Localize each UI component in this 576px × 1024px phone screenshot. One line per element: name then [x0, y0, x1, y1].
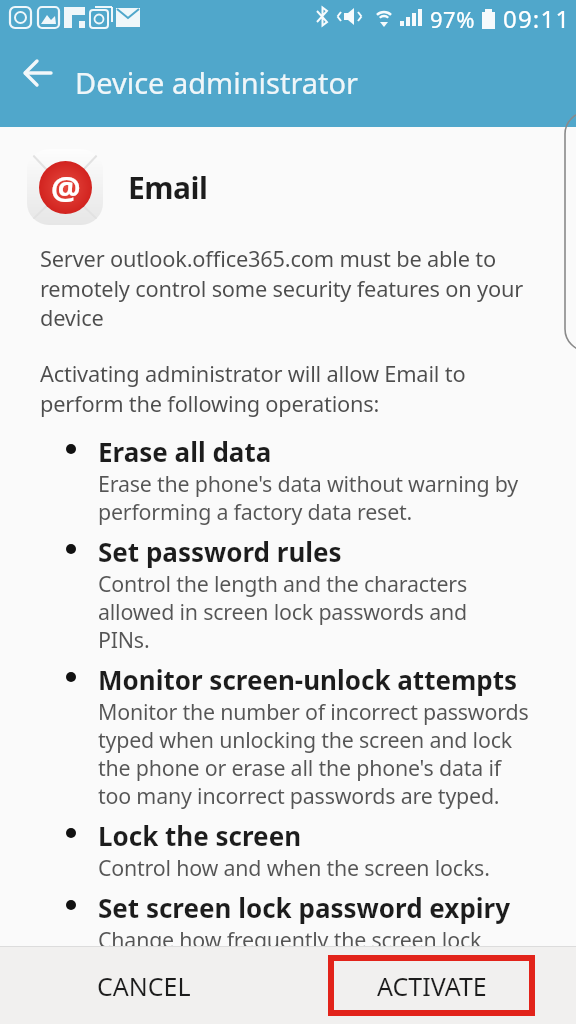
staticText: Set password rules — [98, 534, 342, 569]
staticText: Server outlook.office365.com must be abl… — [40, 244, 523, 332]
staticText: Erase the phone's data without warning b… — [98, 469, 519, 526]
staticText: Lock the screen — [98, 818, 302, 853]
staticText: 97% — [430, 4, 475, 34]
staticText: Change how frequently the screen lock pa… — [98, 925, 482, 982]
button[interactable]: CANCEL — [0, 947, 288, 1024]
staticText: Control the length and the characters al… — [98, 569, 467, 654]
staticText: Monitor the number of incorrect password… — [98, 697, 529, 810]
staticText: Activating administrator will allow Emai… — [40, 359, 466, 418]
staticText: Control how and when the screen locks. — [98, 853, 490, 882]
staticText: Email — [128, 167, 208, 208]
staticText: Erase all data — [98, 434, 272, 469]
staticText: Device administrator — [75, 63, 359, 102]
staticText: ACTIVATE — [377, 969, 487, 1003]
button[interactable]: ACTIVATE — [288, 947, 576, 1024]
staticText: Set screen lock password expiry — [98, 890, 511, 925]
staticText: CANCEL — [97, 969, 191, 1003]
button[interactable] — [3, 37, 73, 109]
staticText: @ — [51, 165, 81, 210]
staticText: Monitor screen-unlock attempts — [98, 662, 518, 697]
staticText: 09:11 — [503, 2, 571, 35]
